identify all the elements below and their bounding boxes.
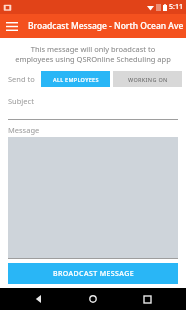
staticText: Send to — [8, 74, 35, 84]
button[interactable]: Open navigation menu — [0, 14, 24, 38]
button[interactable]: WORKING ON — [113, 71, 182, 87]
button[interactable]: Subject — [8, 96, 178, 120]
button[interactable]: Back — [24, 288, 54, 310]
staticText: WORKING ON — [128, 76, 168, 83]
staticText: ALL EMPLOYEES — [53, 76, 99, 83]
button[interactable]: ALL EMPLOYEES — [41, 71, 110, 87]
staticText: This message will only broadcast to empl… — [14, 44, 172, 64]
button[interactable]: BROADCAST MESSAGE — [8, 263, 178, 284]
staticText: Broadcast Message - North Ocean Ave — [28, 20, 184, 32]
staticText: Subject — [8, 96, 34, 106]
staticText: BROADCAST MESSAGE — [53, 269, 134, 279]
button[interactable]: Recent apps — [132, 288, 162, 310]
staticText: 5:11 — [169, 2, 183, 12]
staticText: Message — [8, 125, 40, 135]
button[interactable]: Home — [78, 288, 108, 310]
